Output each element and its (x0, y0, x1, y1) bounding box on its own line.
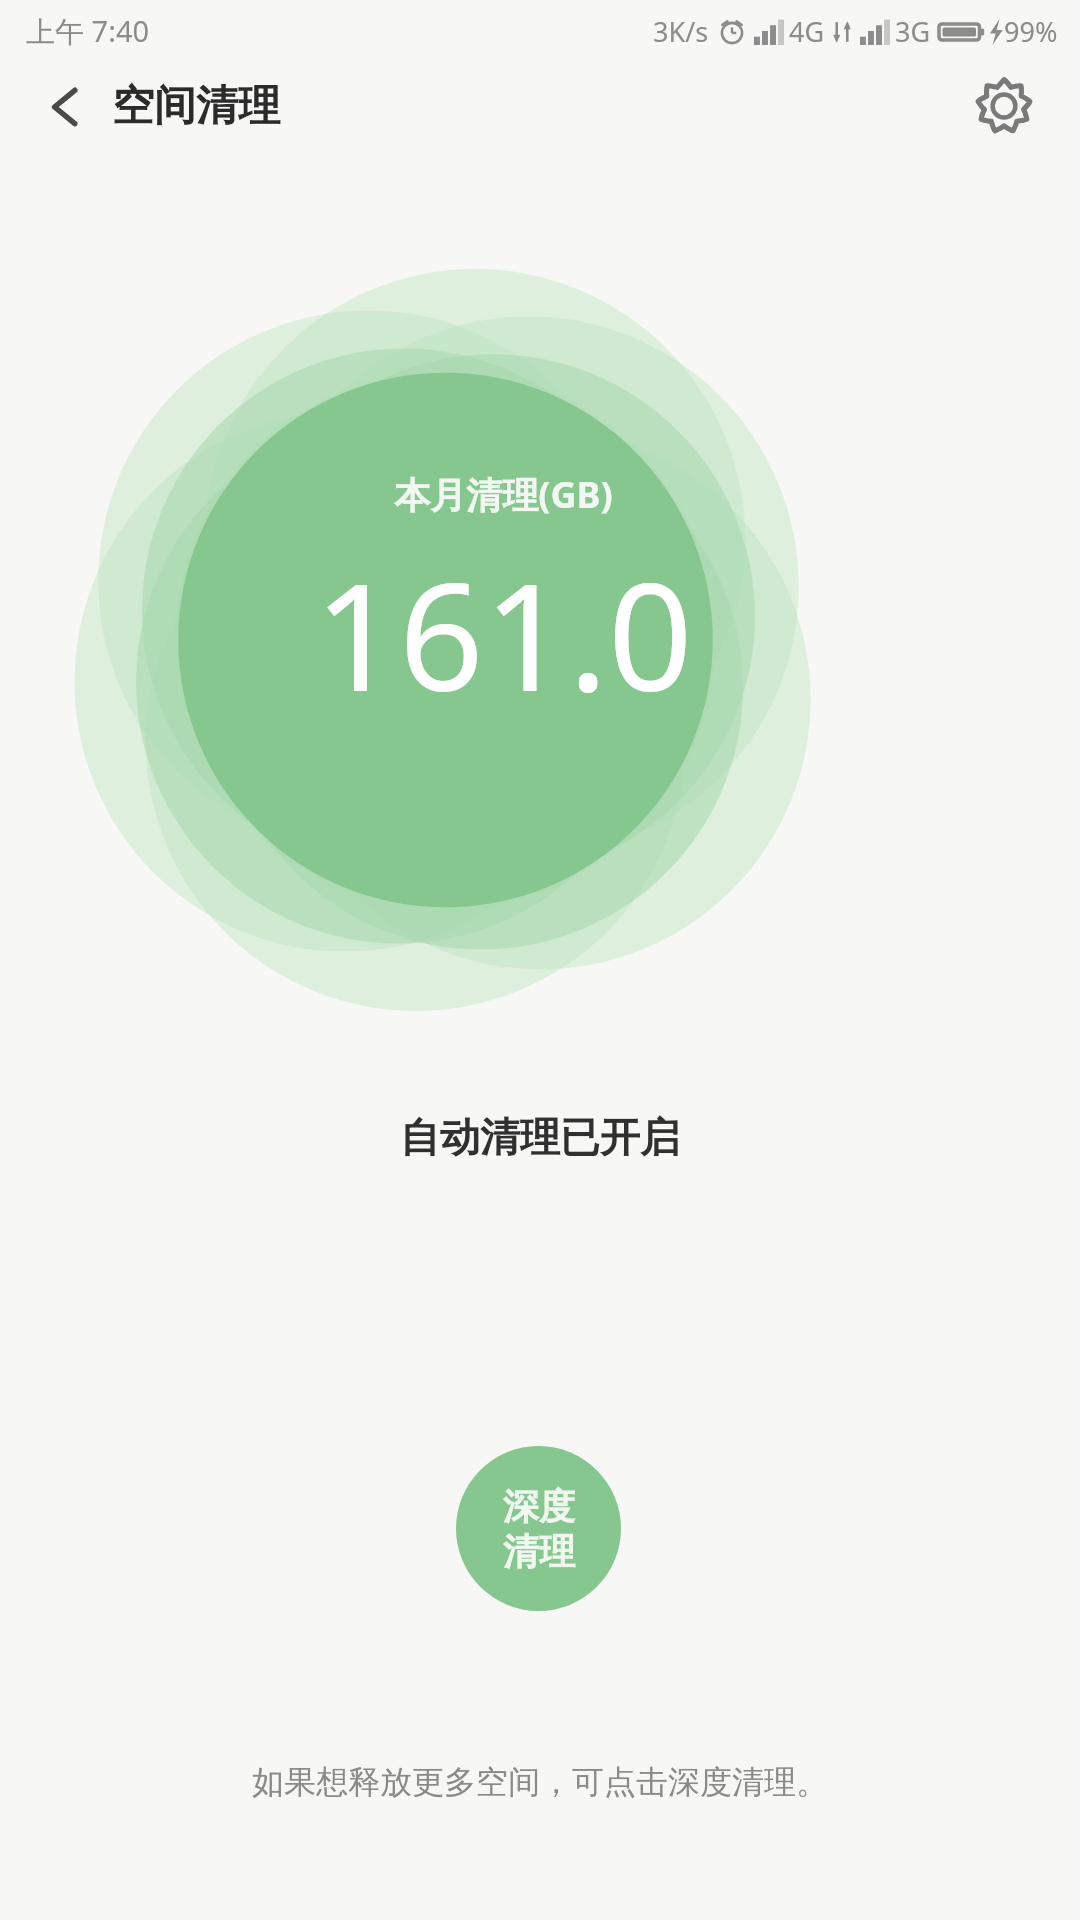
button[interactable]: 深度 (456, 1446, 621, 1611)
staticText: 3K/s (653, 13, 709, 50)
staticText: 如果想释放更多空间，可点击深度清理。 (252, 1762, 828, 1802)
staticText: 4G (789, 13, 825, 50)
staticText: 空间清理 (112, 80, 280, 133)
staticText: 161.0 (314, 533, 693, 735)
staticText: 自动清理已开启 (400, 1112, 680, 1162)
button[interactable]: Settings (962, 64, 1046, 148)
button[interactable]: Back (30, 70, 294, 143)
staticText: 3G (895, 13, 931, 50)
staticText: 本月清理(GB) (394, 470, 613, 519)
other: Back (44, 85, 88, 129)
staticText: 清理 (503, 1529, 575, 1574)
staticText: 深度 (503, 1484, 575, 1529)
staticText: 上午 7:40 (26, 11, 150, 51)
staticText: 99% (1004, 13, 1058, 50)
